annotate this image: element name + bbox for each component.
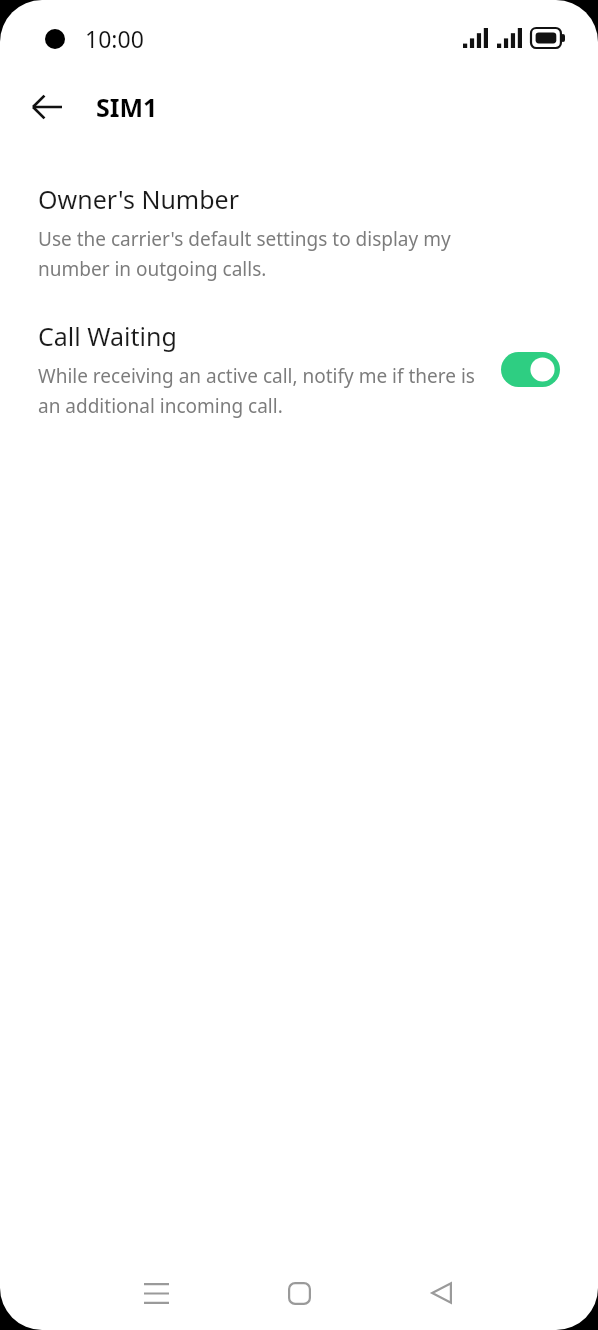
button[interactable]: Back [24,84,70,130]
staticText: Call Waiting [38,319,177,353]
staticText: Use the carrier's default settings to di… [38,226,483,281]
button[interactable]: Recent apps [132,1269,180,1317]
button[interactable]: Back [417,1269,465,1317]
button[interactable]: Home [275,1269,323,1317]
button[interactable]: Owner's Number [0,182,598,281]
button[interactable]: Call Waiting toggle, on [501,349,560,389]
staticText: 10:00 [85,23,144,54]
staticText: While receiving an active call, notify m… [38,363,483,418]
button[interactable]: Call Waiting [0,319,598,418]
staticText: SIM1 [96,90,158,124]
staticText: Owner's Number [38,182,240,216]
